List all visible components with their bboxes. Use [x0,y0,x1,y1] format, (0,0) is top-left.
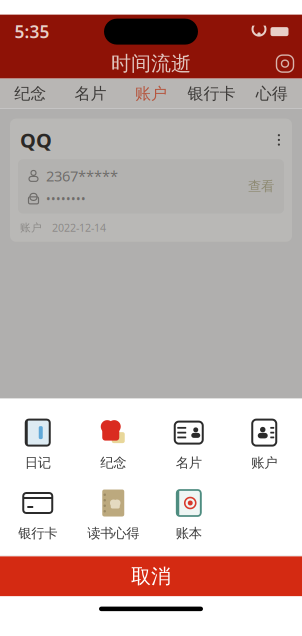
staticText: 时间流逝 [111,51,191,76]
staticText: 账户 [251,455,277,471]
staticText: 银行卡 [18,525,57,541]
staticText: 查看 [248,178,274,195]
staticText: 5:35 [14,20,49,43]
button[interactable]: 名片 [60,79,121,109]
button[interactable]: 名片 [151,409,226,479]
staticText: 读书心得 [87,525,139,541]
staticText: 日记 [25,455,51,471]
button[interactable]: Settings [268,49,302,79]
staticText: 取消 [131,564,171,589]
staticText: 纪念 [100,455,126,471]
staticText: 账户 [20,221,42,234]
button[interactable]: 日记 [0,409,75,479]
staticText: 纪念 [14,84,46,103]
button[interactable]: 纪念 [75,409,151,479]
button[interactable]: 账本 [151,479,226,549]
staticText: 2367***** [46,166,118,186]
staticText: 2022-12-14 [52,221,106,235]
button[interactable]: 账户 [121,79,181,109]
button[interactable]: 账户 [226,409,302,479]
staticText: 名片 [176,455,202,471]
staticText: 心得 [256,84,288,103]
button[interactable]: 取消 [0,556,302,596]
button[interactable]: 银行卡 [0,479,75,549]
staticText: QQ [20,127,52,153]
staticText: •••••••• [46,191,86,207]
staticText: 账本 [176,525,202,541]
staticText: 名片 [75,84,107,103]
staticText: 银行卡 [187,84,235,103]
button[interactable]: 纪念 [0,79,60,109]
staticText: 账户 [135,84,167,103]
button[interactable]: 读书心得 [75,479,151,549]
button[interactable]: 心得 [242,79,302,109]
button[interactable]: 银行卡 [181,79,242,109]
button[interactable]: QQ [10,119,292,242]
